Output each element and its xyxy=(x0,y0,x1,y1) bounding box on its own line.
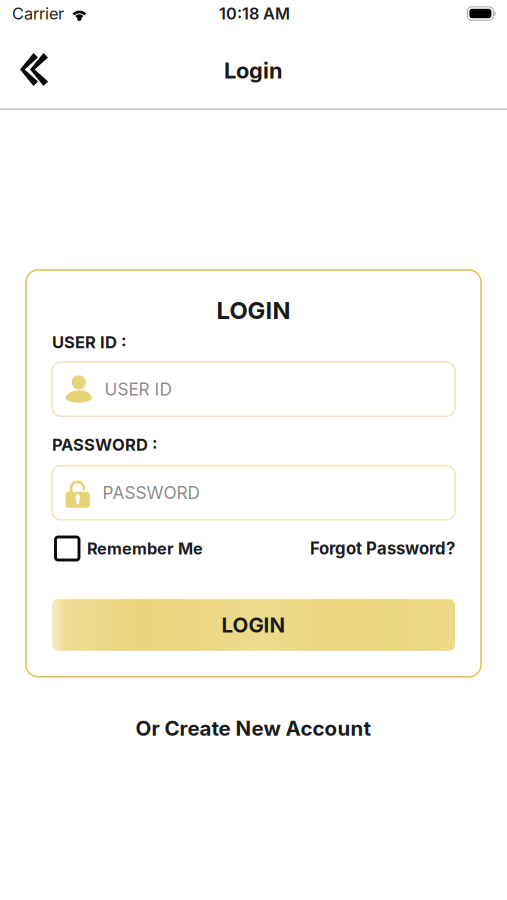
staticText: Or Create New Account xyxy=(135,716,371,741)
button[interactable]: Remember Me xyxy=(52,537,203,560)
staticText: PASSWORD : xyxy=(52,435,158,455)
staticText: 10:18 AM xyxy=(219,4,290,23)
staticText: Remember Me xyxy=(87,539,203,558)
button[interactable]: LOGIN xyxy=(52,599,455,651)
staticText: USER ID : xyxy=(52,332,127,352)
staticText: LOGIN xyxy=(221,612,285,637)
staticText: Login xyxy=(224,57,283,84)
staticText: Carrier xyxy=(12,4,64,23)
button[interactable]: Back xyxy=(0,39,66,98)
staticText: PASSWORD xyxy=(102,482,199,503)
staticText: Forgot Password? xyxy=(310,538,455,559)
staticText: LOGIN xyxy=(216,296,290,325)
staticText: USER ID xyxy=(105,379,172,400)
button[interactable]: Forgot Password? xyxy=(310,538,455,559)
